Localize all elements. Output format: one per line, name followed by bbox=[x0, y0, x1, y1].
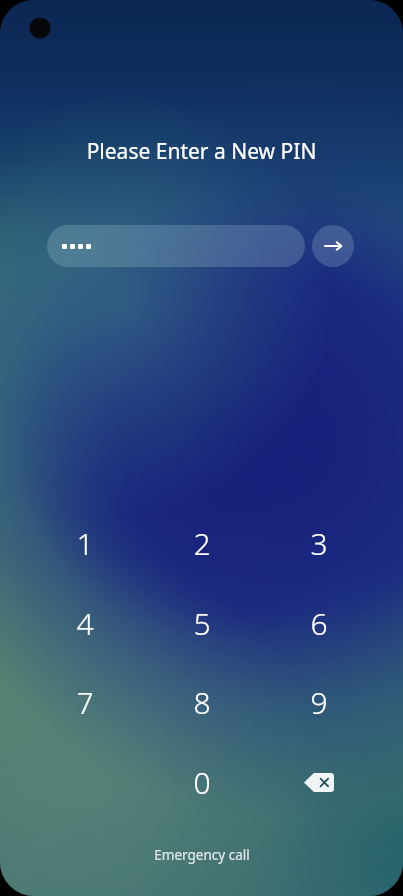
button[interactable]: 4 bbox=[51, 589, 119, 657]
staticText: 8 bbox=[193, 682, 211, 723]
staticText: Emergency call bbox=[154, 846, 250, 864]
staticText: 5 bbox=[193, 603, 211, 644]
button[interactable]: 3 bbox=[285, 509, 353, 577]
button[interactable]: 5 bbox=[168, 589, 236, 657]
button[interactable]: 2 bbox=[168, 509, 236, 577]
staticText: 0 bbox=[193, 762, 211, 803]
staticText: 7 bbox=[76, 682, 94, 723]
button[interactable]: 0 bbox=[168, 748, 236, 816]
button[interactable]: Emergency call bbox=[138, 843, 266, 867]
button[interactable]: 1 bbox=[51, 509, 119, 577]
staticText: 9 bbox=[310, 682, 328, 723]
staticText: 3 bbox=[310, 523, 328, 564]
button[interactable]: 6 bbox=[285, 589, 353, 657]
button[interactable]: 9 bbox=[285, 668, 353, 736]
button[interactable]: 8 bbox=[168, 668, 236, 736]
staticText: Please Enter a New PIN bbox=[0, 137, 403, 166]
staticText: 4 bbox=[76, 603, 94, 644]
staticText: 1 bbox=[76, 523, 94, 564]
button[interactable]: Submit PIN bbox=[312, 225, 354, 267]
button[interactable] bbox=[47, 225, 305, 267]
button[interactable]: 7 bbox=[51, 668, 119, 736]
staticText: 6 bbox=[310, 603, 328, 644]
button[interactable]: Backspace bbox=[285, 748, 353, 816]
staticText: 2 bbox=[193, 523, 211, 564]
